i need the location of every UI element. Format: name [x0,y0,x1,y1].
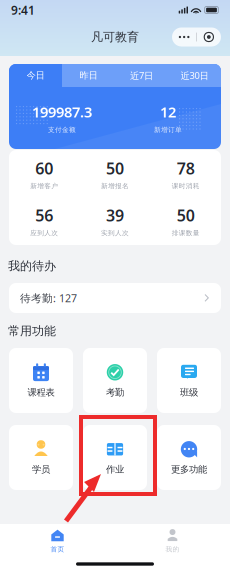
staticText: 待考勤: 127 [20,291,77,305]
button[interactable]: 今日 [9,64,62,87]
staticText: 首页 [50,545,64,553]
button[interactable]: 班级 [157,348,221,413]
staticText: 56 [35,205,53,226]
staticText: 班级 [180,387,198,398]
staticText: 78 [177,158,195,179]
staticText: 昨日 [79,70,97,81]
staticText: 今日 [26,70,44,81]
staticText: 考勤 [106,387,124,398]
staticText: 39 [106,205,124,226]
staticText: 9:41 [11,2,35,18]
staticText: 新增客户 [30,182,58,190]
staticText: 12 [160,102,176,122]
staticText: 更多功能 [171,464,207,475]
staticText: 60 [35,158,53,179]
staticText: 新增订单 [154,126,182,134]
button[interactable]: 我的 [115,524,230,558]
staticText: 支付金额 [48,126,76,134]
staticText: 我的 [165,545,179,553]
staticText: 50 [177,205,195,226]
staticText: 排课数量 [172,229,200,237]
staticText: 常用功能 [8,324,56,338]
button[interactable]: 作业 [83,425,147,490]
staticText: 应到人次 [30,229,58,237]
button[interactable]: 更多功能 [157,425,221,490]
button[interactable]: More options [172,27,196,46]
button[interactable]: 考勤 [83,348,147,413]
button[interactable]: 首页 [0,524,115,558]
button[interactable]: Close mini program [197,27,221,46]
staticText: 凡可教育 [91,30,139,44]
staticText: 实到人次 [101,229,129,237]
staticText: 近7日 [130,69,153,82]
button[interactable]: 学员 [9,425,73,490]
button[interactable]: 课程表 [9,348,73,413]
button[interactable]: 待考勤: 127 [9,283,221,313]
button[interactable]: 昨日 [62,64,115,87]
staticText: 课程表 [27,387,54,398]
button[interactable]: 近7日 [115,64,168,87]
staticText: 课时消耗 [172,182,200,190]
staticText: 近30日 [180,69,208,82]
button[interactable]: 近30日 [168,64,221,87]
staticText: 199987.3 [32,102,92,122]
staticText: 50 [106,158,124,179]
staticText: 学员 [32,464,50,475]
staticText: 我的待办 [8,259,56,273]
staticText: 作业 [106,464,124,475]
staticText: 新增报名 [101,182,129,190]
